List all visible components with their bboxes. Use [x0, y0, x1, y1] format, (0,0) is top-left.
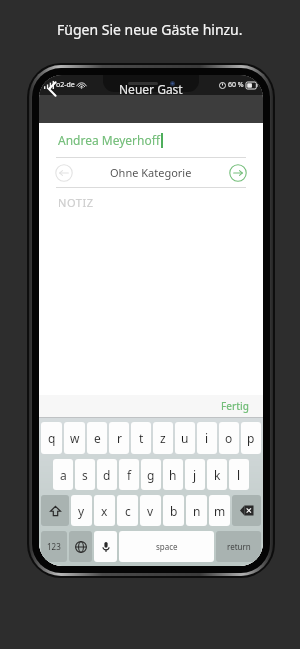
button[interactable]: Zurück	[39, 76, 65, 102]
button[interactable]: Löschen	[232, 495, 261, 526]
staticText: w	[70, 430, 80, 446]
staticText: u	[181, 430, 189, 446]
staticText: b	[170, 503, 178, 519]
staticText: Neuer Gast	[119, 81, 183, 97]
button[interactable]: Sprache	[69, 531, 92, 562]
staticText: x	[101, 503, 108, 519]
staticText: 123	[47, 541, 61, 552]
staticText: a	[60, 467, 67, 483]
button[interactable]: l	[229, 459, 249, 490]
button[interactable]: r	[109, 422, 129, 454]
staticText: q	[48, 430, 56, 446]
staticText: e	[94, 430, 101, 446]
staticText: y	[78, 503, 85, 519]
button[interactable]: p	[241, 422, 261, 454]
staticText: n	[193, 503, 201, 519]
staticText: h	[169, 467, 177, 483]
other: Vorherige Kategorie	[55, 164, 73, 182]
button[interactable]: v	[140, 495, 161, 526]
staticText: z	[160, 430, 166, 446]
button[interactable]: s	[75, 459, 95, 490]
staticText: Fügen Sie neue Gäste hinzu.	[57, 20, 243, 39]
button[interactable]: q	[41, 422, 62, 454]
staticText: i	[205, 430, 209, 446]
button[interactable]: z	[153, 422, 173, 454]
button[interactable]: t	[131, 422, 151, 454]
button[interactable]: b	[163, 495, 184, 526]
button[interactable]: space	[119, 531, 214, 562]
staticText: Fertig	[221, 399, 249, 413]
staticText: l	[237, 467, 241, 483]
other: Nächste Kategorie	[229, 164, 247, 182]
button[interactable]: d	[97, 459, 117, 490]
staticText: d	[103, 467, 111, 483]
button[interactable]: m	[209, 495, 230, 526]
button[interactable]: Vorherige Kategorie	[39, 158, 263, 187]
button[interactable]: g	[141, 459, 161, 490]
staticText: space	[156, 541, 178, 552]
staticText: j	[193, 467, 197, 483]
staticText: c	[125, 503, 131, 519]
button[interactable]: Umschalt	[41, 495, 69, 526]
button[interactable]: u	[175, 422, 195, 454]
staticText: v	[147, 503, 154, 519]
button[interactable]: Fertig	[207, 396, 263, 416]
button[interactable]: x	[94, 495, 115, 526]
button[interactable]: w	[64, 422, 85, 454]
staticText: s	[82, 467, 88, 483]
button[interactable]: Diktieren	[94, 531, 117, 562]
button[interactable]: j	[185, 459, 205, 490]
staticText: return	[227, 541, 251, 552]
button[interactable]: e	[87, 422, 107, 454]
button[interactable]: f	[119, 459, 139, 490]
button[interactable]: i	[197, 422, 217, 454]
staticText: r	[117, 430, 122, 446]
button[interactable]: Zahlen	[41, 531, 67, 562]
button[interactable]: h	[163, 459, 183, 490]
staticText: NOTIZ	[58, 195, 94, 210]
button[interactable]: c	[117, 495, 138, 526]
staticText: k	[214, 467, 221, 483]
staticText: 60 %	[228, 80, 244, 90]
staticText: m	[214, 503, 226, 519]
staticText: f	[127, 467, 132, 483]
staticText: p	[247, 430, 255, 446]
staticText: o2-de	[56, 80, 75, 90]
staticText: o	[225, 430, 233, 446]
button[interactable]: o	[219, 422, 239, 454]
button[interactable]: n	[186, 495, 207, 526]
button[interactable]: return	[216, 531, 261, 562]
button[interactable]: a	[53, 459, 73, 490]
staticText: t	[139, 430, 144, 446]
button[interactable]: k	[207, 459, 227, 490]
button[interactable]: y	[71, 495, 92, 526]
staticText: Andrea Meyerhoff	[58, 132, 160, 148]
staticText: g	[147, 467, 155, 483]
staticText: Ohne Kategorie	[110, 165, 192, 180]
